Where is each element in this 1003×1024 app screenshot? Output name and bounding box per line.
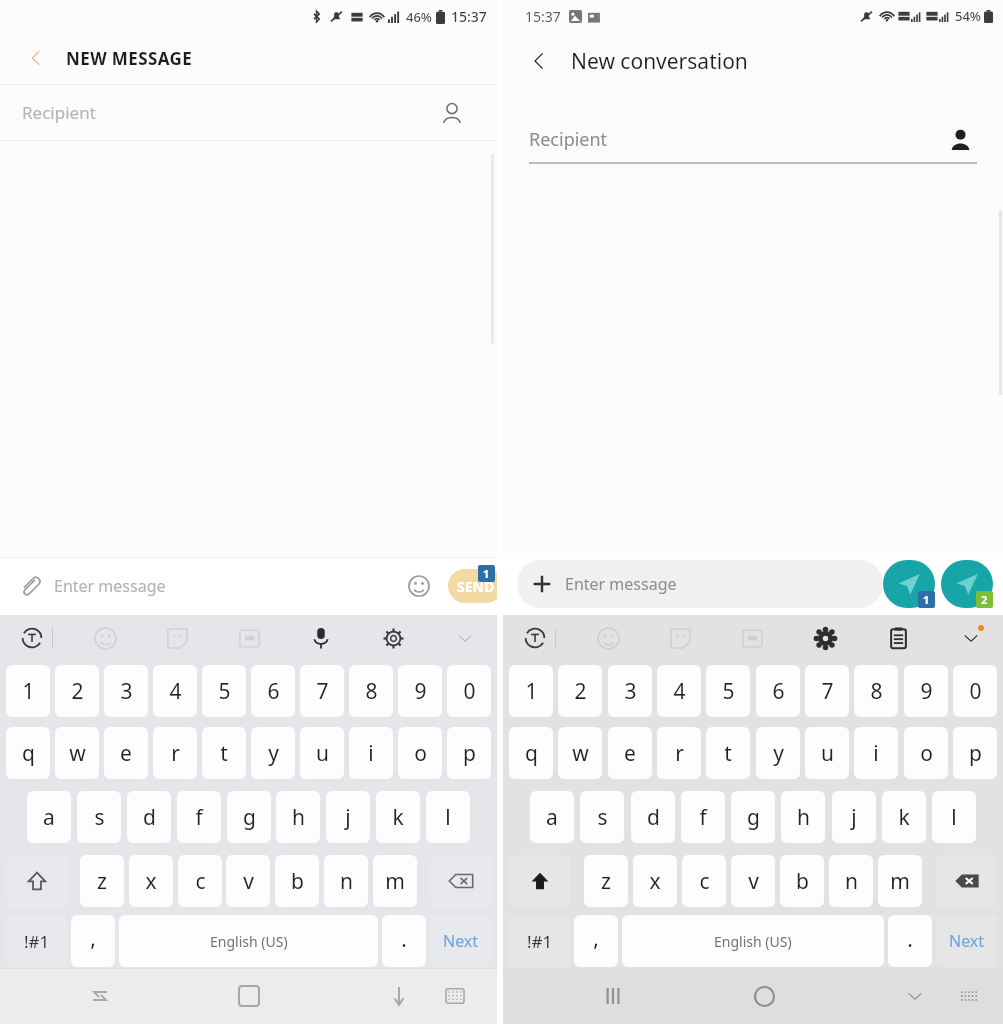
button[interactable]: Send — [941, 560, 993, 608]
button[interactable]: 6 — [251, 665, 295, 717]
button[interactable]: h — [276, 791, 320, 843]
button[interactable]: Keyboard — [947, 974, 991, 1018]
button[interactable]: v — [226, 855, 270, 907]
button[interactable]: t — [202, 727, 246, 779]
button[interactable]: o — [398, 727, 442, 779]
button[interactable]: p — [447, 727, 491, 779]
button[interactable]: u — [300, 727, 344, 779]
button[interactable]: 1 — [6, 665, 50, 717]
button[interactable]: x — [633, 855, 677, 907]
button[interactable]: , — [574, 915, 618, 967]
button[interactable]: Recipient — [529, 116, 977, 162]
button[interactable]: n — [324, 855, 368, 907]
button[interactable]: Settings — [805, 618, 845, 658]
button[interactable]: e — [104, 727, 148, 779]
button[interactable]: Back — [18, 40, 54, 76]
button[interactable]: d — [631, 791, 675, 843]
button[interactable]: 4 — [657, 665, 701, 717]
button[interactable]: z — [584, 855, 628, 907]
button[interactable]: 2 — [55, 665, 99, 717]
button[interactable] — [6, 855, 67, 907]
button[interactable]: 7 — [805, 665, 849, 717]
button[interactable]: SEND — [448, 569, 503, 603]
button[interactable]: Emoji — [85, 618, 125, 658]
button[interactable]: b — [275, 855, 319, 907]
button[interactable]: s — [77, 791, 121, 843]
button[interactable]: Collapse — [951, 618, 991, 658]
button[interactable]: k — [882, 791, 926, 843]
button[interactable]: g — [227, 791, 271, 843]
button[interactable]: t — [706, 727, 750, 779]
button[interactable]: h — [781, 791, 825, 843]
button[interactable]: Recents — [78, 974, 122, 1018]
button[interactable]: q — [6, 727, 50, 779]
button[interactable]: Text mode — [12, 618, 52, 658]
button[interactable]: r — [657, 727, 701, 779]
button[interactable] — [430, 855, 491, 907]
button[interactable]: j — [326, 791, 370, 843]
button[interactable]: English (US) — [622, 915, 884, 967]
button[interactable] — [936, 855, 997, 907]
button[interactable]: 7 — [300, 665, 344, 717]
button[interactable]: Send — [883, 560, 935, 608]
button[interactable]: 3 — [104, 665, 148, 717]
button[interactable]: !#1 — [509, 915, 570, 967]
button[interactable]: Stickers — [157, 618, 197, 658]
button[interactable]: e — [608, 727, 652, 779]
button[interactable]: Recipient — [0, 85, 497, 140]
button[interactable]: k — [376, 791, 420, 843]
button[interactable]: Hide keyboard — [377, 974, 421, 1018]
button[interactable]: x — [129, 855, 173, 907]
button[interactable]: p — [953, 727, 997, 779]
button[interactable]: 0 — [953, 665, 997, 717]
button[interactable]: Voice input — [301, 618, 341, 658]
button[interactable]: b — [780, 855, 824, 907]
button[interactable]: 2 — [558, 665, 602, 717]
button[interactable]: 6 — [756, 665, 800, 717]
button[interactable]: n — [829, 855, 873, 907]
button[interactable]: English (US) — [119, 915, 378, 967]
button[interactable]: Text mode — [515, 618, 555, 658]
button[interactable]: GIF — [732, 618, 772, 658]
button[interactable]: d — [127, 791, 171, 843]
button[interactable]: q — [509, 727, 553, 779]
button[interactable]: j — [832, 791, 876, 843]
button[interactable]: 8 — [349, 665, 393, 717]
button[interactable]: i — [349, 727, 393, 779]
button[interactable]: v — [731, 855, 775, 907]
button[interactable]: a — [530, 791, 574, 843]
button[interactable]: Keyboard — [433, 974, 477, 1018]
button[interactable]: o — [904, 727, 948, 779]
button[interactable]: Collapse — [445, 618, 485, 658]
button[interactable]: . — [888, 915, 932, 967]
button[interactable]: Home — [227, 974, 271, 1018]
button[interactable]: Pick contact — [943, 122, 977, 156]
button[interactable]: 1 — [509, 665, 553, 717]
button[interactable]: Stickers — [660, 618, 700, 658]
button[interactable]: c — [178, 855, 222, 907]
button[interactable]: Settings — [373, 618, 413, 658]
button[interactable]: 9 — [398, 665, 442, 717]
button[interactable]: u — [805, 727, 849, 779]
button[interactable]: w — [558, 727, 602, 779]
button[interactable]: 8 — [854, 665, 898, 717]
button[interactable]: Emoji — [402, 569, 436, 603]
button[interactable]: r — [153, 727, 197, 779]
button[interactable]: l — [426, 791, 470, 843]
button[interactable]: Clipboard — [878, 618, 918, 658]
button[interactable]: GIF — [229, 618, 269, 658]
button[interactable]: y — [756, 727, 800, 779]
button[interactable]: s — [580, 791, 624, 843]
button[interactable]: 3 — [608, 665, 652, 717]
button[interactable]: 0 — [447, 665, 491, 717]
button[interactable]: f — [177, 791, 221, 843]
button[interactable]: z — [80, 855, 124, 907]
button[interactable]: a — [27, 791, 71, 843]
button[interactable]: Recents — [591, 974, 635, 1018]
button[interactable]: m — [373, 855, 417, 907]
button[interactable]: 9 — [904, 665, 948, 717]
button[interactable]: 4 — [153, 665, 197, 717]
button[interactable]: , — [71, 915, 115, 967]
button[interactable]: g — [731, 791, 775, 843]
button[interactable]: Hide keyboard — [893, 974, 937, 1018]
